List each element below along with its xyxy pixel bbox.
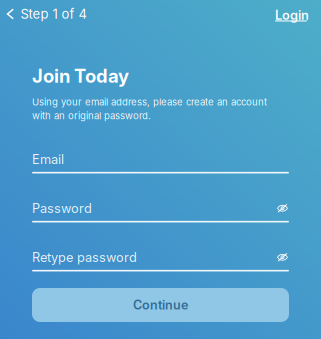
staticText: Login: [275, 7, 309, 23]
staticText: Step 1 of 4: [21, 6, 87, 22]
staticText: Join Today: [32, 65, 129, 87]
button[interactable]: Step 1 of 4: [0, 0, 95, 28]
staticText: Email: [32, 151, 64, 167]
staticText: Continue: [133, 297, 188, 313]
staticText: Using your email address, please create …: [32, 96, 267, 121]
button[interactable]: Show Retype password: [276, 250, 289, 265]
staticText: Retype password: [32, 249, 137, 265]
button[interactable]: Show Password: [276, 201, 289, 216]
button[interactable]: Continue: [32, 288, 289, 322]
button[interactable]: Login: [265, 0, 321, 29]
staticText: Password: [32, 200, 92, 216]
